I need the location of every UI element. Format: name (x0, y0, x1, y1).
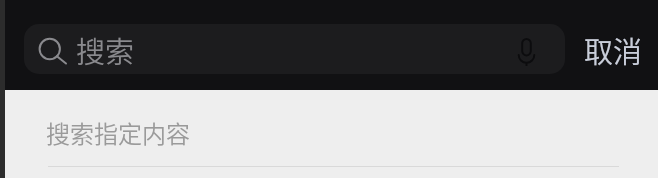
staticText: 搜索 (76, 29, 135, 71)
staticText: 取消 (584, 29, 643, 71)
staticText: 搜索指定内容 (46, 115, 190, 150)
button[interactable]: 搜索指定内容 (0, 90, 658, 166)
button[interactable]: 取消 (577, 26, 651, 76)
button[interactable]: 搜索输入框 (24, 24, 565, 74)
button[interactable]: 语音搜索 (502, 24, 550, 74)
